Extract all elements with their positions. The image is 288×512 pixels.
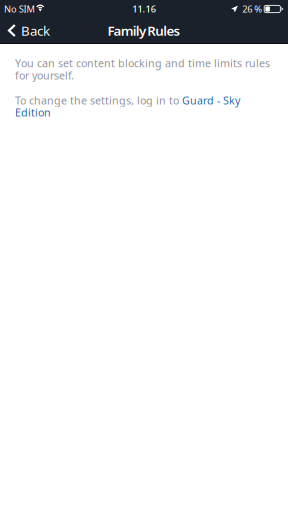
staticText: Back [21, 22, 50, 39]
button[interactable]: Edition [15, 105, 51, 119]
staticText: 11.16 [132, 3, 156, 15]
button[interactable]: Guard - Sky [182, 93, 240, 107]
staticText: Guard - Sky [182, 93, 240, 107]
staticText: Edition [15, 105, 51, 119]
staticText: Family Rules [107, 22, 181, 39]
button[interactable]: Back [0, 18, 62, 43]
staticText: 26 % [242, 3, 262, 15]
staticText: To change the settings, log in to [15, 93, 182, 107]
staticText: You can set content blocking and time li… [15, 56, 270, 82]
staticText: No SIM [4, 3, 34, 15]
